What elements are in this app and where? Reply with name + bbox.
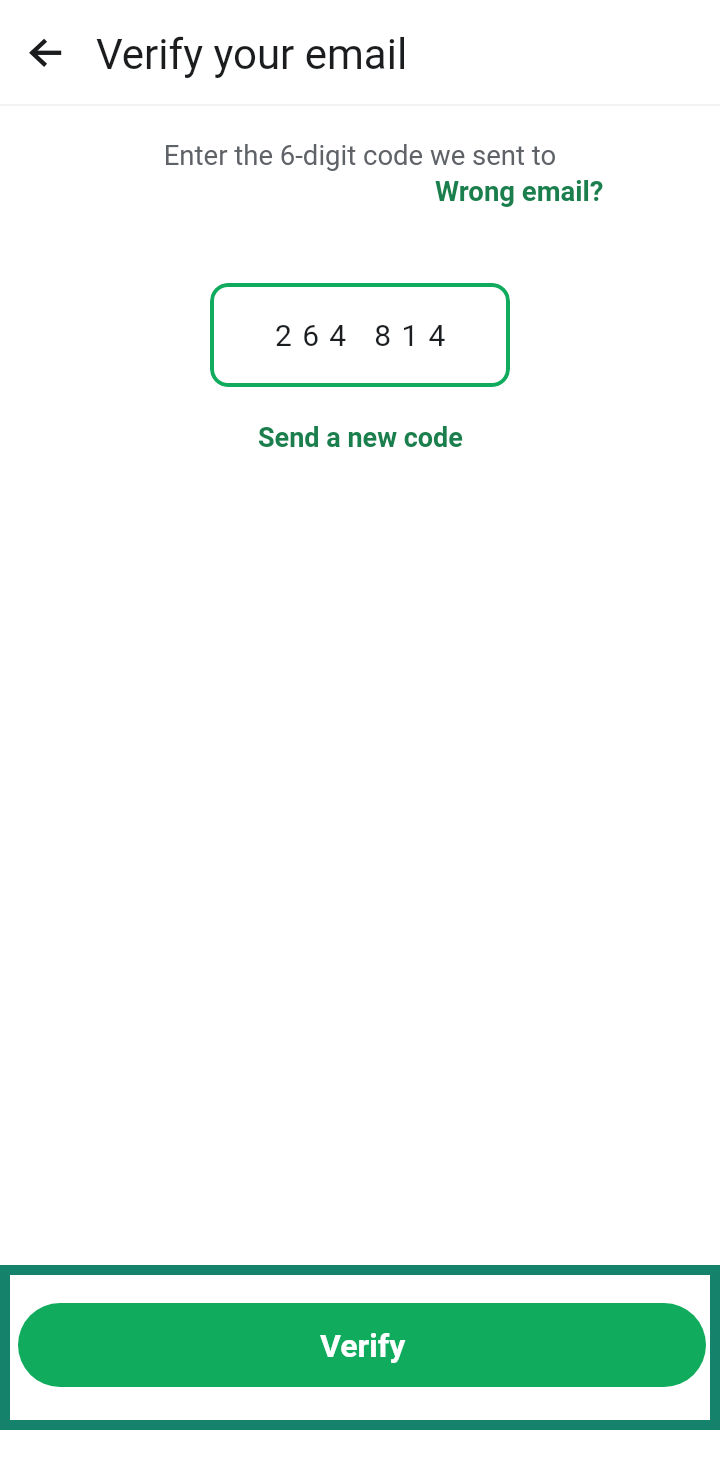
staticText: Verify your email (96, 30, 408, 79)
button[interactable]: Wrong email? (0, 175, 604, 207)
staticText: Enter the 6-digit code we sent to (0, 139, 720, 171)
button[interactable]: Send a new code (246, 418, 475, 458)
staticText: Wrong email? (435, 175, 604, 207)
staticText: Send a new code (258, 422, 463, 454)
button[interactable]: Verify (18, 1303, 706, 1387)
button[interactable]: Back (6, 12, 86, 92)
staticText: 264 814 (275, 318, 456, 353)
staticText: Verify (320, 1327, 406, 1365)
button[interactable]: 264 814 (210, 283, 510, 387)
